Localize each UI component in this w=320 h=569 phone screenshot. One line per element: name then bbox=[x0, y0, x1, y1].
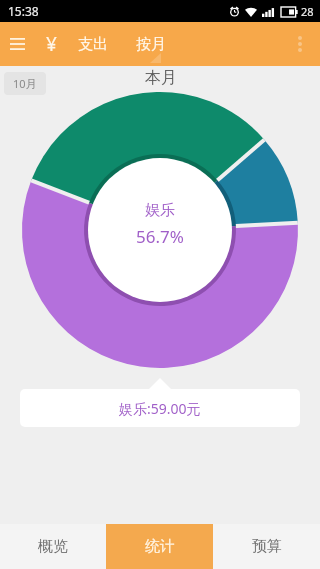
staticText: 娱乐 bbox=[145, 201, 175, 220]
staticText: 56.7% bbox=[136, 225, 184, 248]
staticText: 预算 bbox=[252, 537, 282, 556]
staticText: 10月 bbox=[13, 76, 37, 91]
button[interactable]: 概览 bbox=[0, 524, 106, 569]
button[interactable]: 按月 bbox=[126, 29, 176, 60]
staticText: ¥ bbox=[46, 31, 57, 57]
staticText: 28 bbox=[301, 4, 314, 19]
staticText: 概览 bbox=[38, 537, 68, 556]
staticText: 娱乐:59.00元 bbox=[119, 399, 201, 418]
button[interactable]: 娱乐:59.00元 bbox=[20, 389, 300, 427]
staticText: 按月 bbox=[136, 35, 166, 54]
staticText: 15:38 bbox=[8, 3, 39, 19]
staticText: 支出 bbox=[78, 35, 108, 54]
button[interactable]: 统计 bbox=[106, 524, 213, 569]
button[interactable]: 预算 bbox=[213, 524, 320, 569]
button[interactable]: 10月 bbox=[4, 72, 46, 95]
button[interactable]: Menu bbox=[0, 27, 34, 61]
button[interactable]: More options bbox=[280, 24, 320, 64]
button[interactable]: 支出 bbox=[68, 29, 118, 60]
button[interactable]: Currency bbox=[34, 27, 68, 61]
staticText: 本月 bbox=[145, 68, 177, 88]
staticText: 统计 bbox=[145, 537, 175, 556]
